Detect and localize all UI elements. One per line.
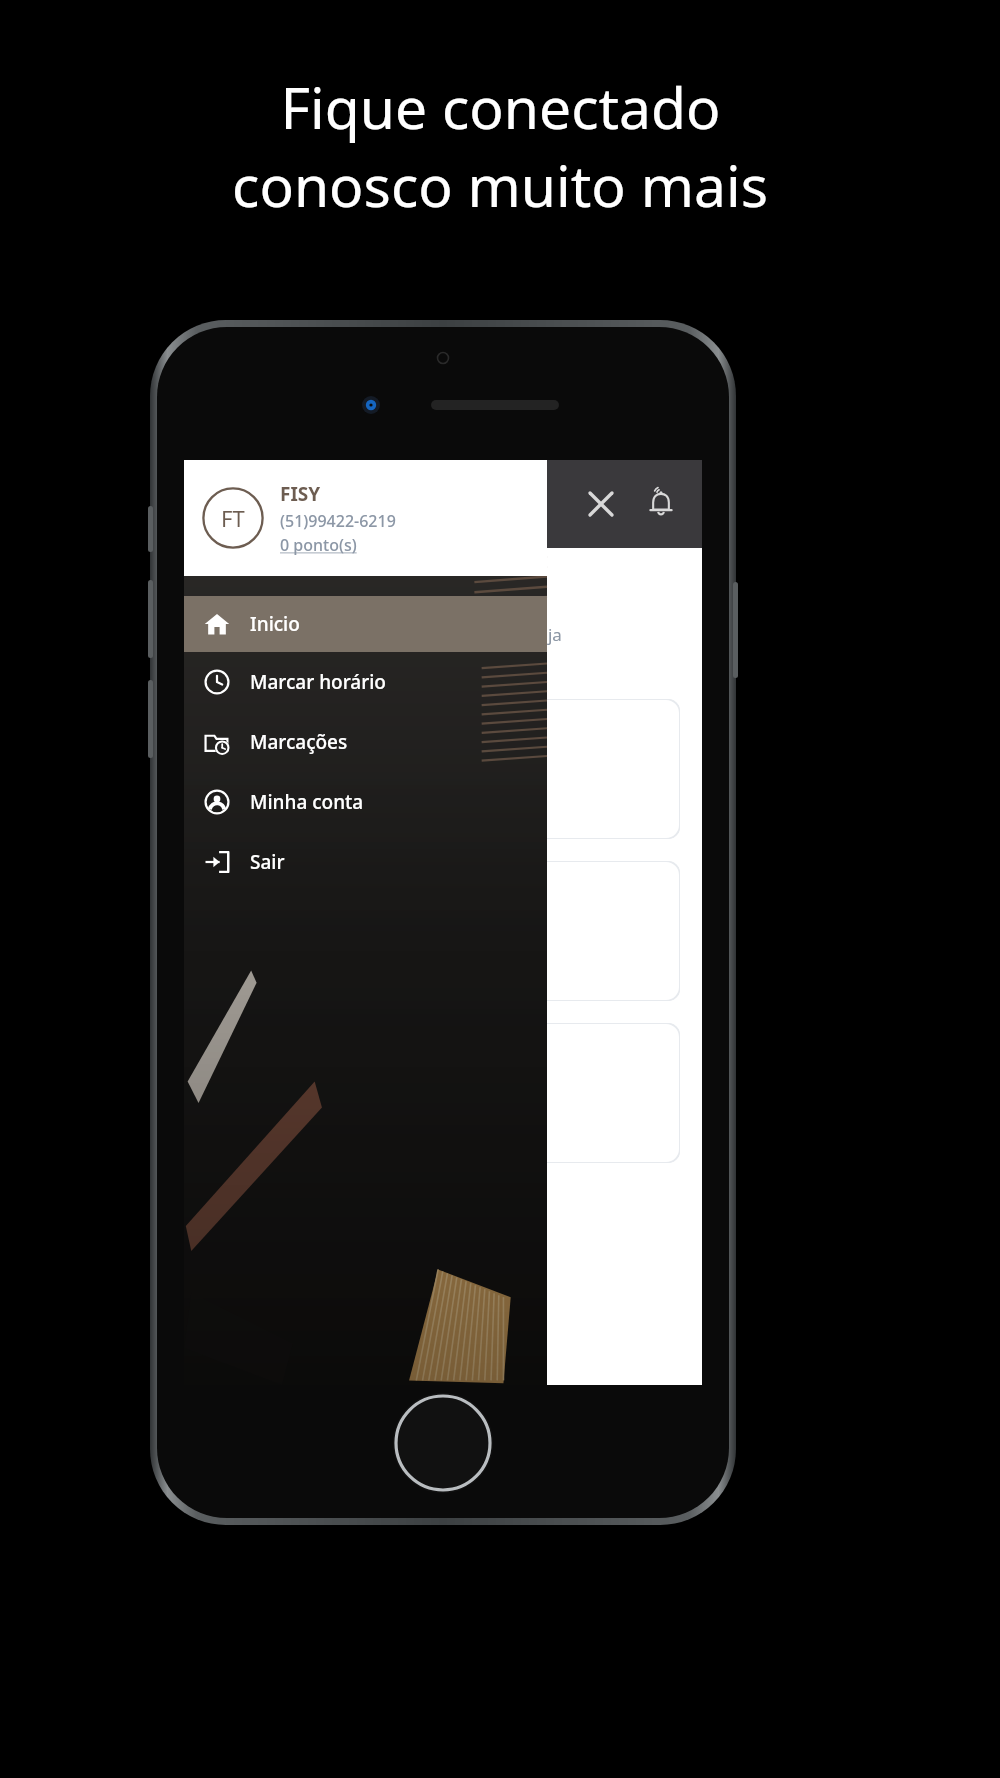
other: Home [393, 1393, 493, 1493]
staticText: Minha conta [250, 789, 364, 815]
button[interactable]: Nossos serviços [206, 699, 680, 839]
staticText: Marcações [250, 729, 348, 755]
staticText: FISY [280, 481, 321, 507]
staticText: (51)99422-6219 [280, 510, 396, 532]
button[interactable]: FT [184, 460, 547, 576]
staticText: Marcar horário [250, 669, 386, 695]
button[interactable]: Sair [184, 832, 547, 892]
button[interactable]: Notificações [634, 477, 688, 531]
button[interactable]: Nossos atendimentos [206, 861, 680, 1001]
staticText: Sair [250, 849, 285, 875]
staticText: Estamos muito felizes com você no app. V… [206, 623, 562, 673]
staticText: Inicio [250, 611, 300, 637]
staticText: conosco muito mais [232, 146, 768, 224]
button[interactable]: Minha conta [184, 772, 547, 832]
button[interactable]: Marcações [184, 712, 547, 772]
staticText: Seja bem-vindo! [206, 574, 409, 611]
button[interactable]: Inicio [184, 596, 547, 652]
button[interactable]: Marque seu horário agora mesmo [206, 1023, 680, 1163]
staticText: FT [221, 503, 245, 533]
button[interactable]: Fechar [574, 477, 628, 531]
staticText: Fique conectado [280, 68, 721, 146]
button[interactable]: Marcar horário [184, 652, 547, 712]
staticText: Marque seu horário agora mesmo [224, 1082, 498, 1105]
button[interactable]: 0 ponto(s) [280, 534, 357, 556]
